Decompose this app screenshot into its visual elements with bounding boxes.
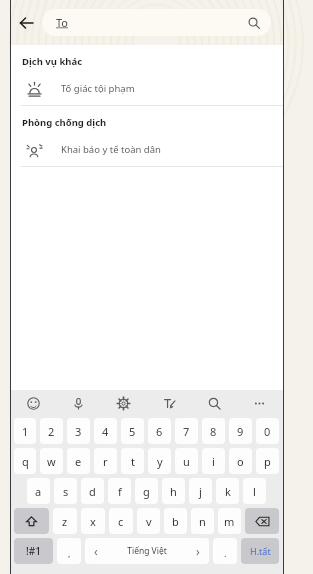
button[interactable]: To [42, 9, 271, 36]
button[interactable]: , [57, 538, 81, 564]
button[interactable]: f [108, 478, 131, 504]
button[interactable]: Tố giác tội phạm [10, 72, 283, 105]
staticText: h [170, 484, 177, 499]
button[interactable]: Back [10, 7, 42, 39]
button[interactable]: 6 [148, 418, 171, 444]
staticText: v [146, 514, 152, 529]
button[interactable]: y [148, 448, 171, 474]
staticText: . [224, 547, 227, 559]
staticText: u [183, 454, 190, 469]
button[interactable]: n [191, 508, 214, 534]
button[interactable]: H.tất [241, 538, 279, 564]
staticText: q [22, 454, 29, 469]
staticText: › [196, 543, 200, 559]
staticText: H.tất [250, 545, 271, 557]
staticText: s [63, 484, 69, 499]
button[interactable]: k [216, 478, 239, 504]
button[interactable]: 3 [67, 418, 90, 444]
staticText: g [143, 484, 150, 499]
button[interactable]: x [81, 508, 105, 534]
button[interactable]: Voice input [68, 393, 89, 414]
button[interactable]: h [162, 478, 185, 504]
button[interactable]: r [94, 448, 117, 474]
staticText: a [35, 484, 42, 499]
button[interactable]: m [218, 508, 241, 534]
staticText: 4 [102, 424, 109, 439]
button[interactable]: z [53, 508, 77, 534]
staticText: 7 [183, 424, 190, 439]
staticText: c [118, 514, 124, 529]
button[interactable]: c [109, 508, 133, 534]
button[interactable]: 4 [94, 418, 117, 444]
button[interactable]: l [243, 478, 266, 504]
button[interactable]: i [202, 448, 225, 474]
button[interactable]: 1 [14, 418, 36, 444]
button[interactable]: Keyboard settings [113, 393, 134, 414]
staticText: p [264, 454, 271, 469]
button[interactable]: 8 [202, 418, 225, 444]
staticText: i [212, 454, 215, 469]
button[interactable]: More options [249, 393, 270, 414]
button[interactable]: Handwriting [159, 393, 180, 414]
staticText: Khai báo y tế toàn dân [61, 143, 161, 156]
staticText: Tiếng Việt [98, 545, 196, 557]
staticText: x [90, 514, 96, 529]
staticText: Dịch vụ khác [22, 55, 83, 68]
staticText: k [225, 484, 231, 499]
button[interactable]: . [213, 538, 237, 564]
staticText: f [118, 484, 122, 499]
button[interactable]: 5 [121, 418, 144, 444]
button[interactable]: w [40, 448, 63, 474]
button[interactable]: t [121, 448, 144, 474]
staticText: m [224, 514, 235, 529]
button[interactable]: Shift [14, 508, 49, 534]
staticText: 6 [156, 424, 163, 439]
button[interactable]: p [256, 448, 279, 474]
button[interactable]: d [81, 478, 104, 504]
staticText: d [89, 484, 96, 499]
button[interactable]: 9 [229, 418, 252, 444]
staticText: 1 [22, 424, 29, 439]
staticText: o [237, 454, 244, 469]
button[interactable]: 2 [40, 418, 63, 444]
button[interactable]: Emoji [23, 393, 44, 414]
staticText: z [62, 514, 68, 529]
staticText: ‹ [94, 543, 98, 559]
staticText: b [172, 514, 179, 529]
button[interactable]: u [175, 448, 198, 474]
staticText: l [253, 484, 256, 499]
button[interactable]: Search [204, 393, 225, 414]
staticText: Tố giác tội phạm [61, 82, 135, 95]
staticText: 0 [264, 424, 271, 439]
button[interactable]: j [189, 478, 212, 504]
button[interactable]: !#1 [14, 538, 53, 564]
staticText: r [103, 454, 108, 469]
staticText: t [131, 454, 135, 469]
staticText: , [68, 547, 71, 559]
staticText: Phòng chống dịch [22, 116, 107, 129]
button[interactable]: v [137, 508, 160, 534]
button[interactable]: Backspace [245, 508, 279, 534]
button[interactable]: Khai báo y tế toàn dân [10, 133, 283, 166]
staticText: !#1 [26, 544, 41, 558]
staticText: y [157, 454, 163, 469]
staticText: n [199, 514, 206, 529]
staticText: 5 [129, 424, 136, 439]
staticText: 9 [237, 424, 244, 439]
staticText: j [199, 484, 202, 499]
staticText: 8 [210, 424, 217, 439]
button[interactable]: b [164, 508, 187, 534]
button[interactable]: a [27, 478, 50, 504]
button[interactable]: g [135, 478, 158, 504]
staticText: 2 [48, 424, 55, 439]
staticText: 3 [75, 424, 82, 439]
button[interactable]: e [67, 448, 90, 474]
staticText: w [47, 454, 56, 469]
button[interactable]: 0 [256, 418, 279, 444]
button[interactable]: o [229, 448, 252, 474]
staticText: To [56, 15, 69, 30]
button[interactable]: q [14, 448, 36, 474]
button[interactable]: 7 [175, 418, 198, 444]
button[interactable]: s [54, 478, 77, 504]
button[interactable]: ‹ [85, 538, 209, 564]
